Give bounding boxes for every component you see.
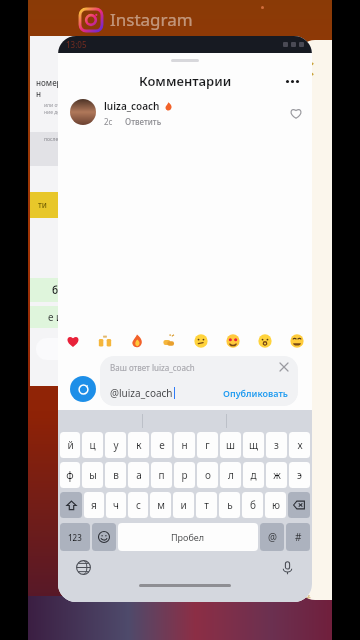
staticText: номером — [36, 77, 73, 88]
button[interactable]: ж — [266, 462, 287, 488]
button[interactable]: з — [266, 432, 287, 458]
button[interactable]: Heart — [66, 334, 80, 348]
staticText: # — [304, 523, 311, 537]
button[interactable]: и — [173, 492, 194, 518]
staticText: ти — [38, 199, 47, 210]
button[interactable]: л — [220, 462, 241, 488]
button[interactable]: Voice input — [278, 558, 296, 576]
button[interactable]: а — [128, 462, 149, 488]
button[interactable]: Ответить — [125, 116, 162, 127]
button[interactable]: я — [84, 492, 104, 518]
staticText: ь — [227, 498, 233, 512]
staticText: р — [181, 468, 188, 482]
staticText: ние денег — [44, 109, 69, 116]
button[interactable]: More options — [282, 71, 302, 91]
staticText: # — [304, 477, 311, 491]
staticText: Instagram — [110, 8, 193, 31]
button[interactable]: ц — [82, 432, 103, 458]
button[interactable]: э — [289, 462, 310, 488]
button[interactable]: Emoji reaction — [194, 334, 208, 348]
button[interactable]: Close reply — [280, 363, 288, 371]
button[interactable]: Raising hands — [98, 334, 112, 348]
button[interactable]: х — [289, 432, 310, 458]
button[interactable]: Like — [290, 107, 302, 119]
staticText: у — [113, 438, 119, 452]
staticText: Ваш ответ luiza_coach — [110, 362, 195, 373]
button[interactable]: ь — [219, 492, 240, 518]
button[interactable]: Camera — [70, 376, 96, 402]
staticText: г — [205, 438, 210, 452]
button[interactable]: р — [174, 462, 195, 488]
button[interactable]: Clap — [162, 334, 176, 348]
staticText: л — [228, 468, 234, 482]
button[interactable]: Пробел — [118, 523, 258, 551]
button[interactable]: г — [197, 432, 218, 458]
staticText: 13:05 — [66, 39, 87, 50]
button[interactable]: номером — [30, 36, 106, 386]
button[interactable]: д — [243, 462, 264, 488]
button[interactable]: Fire — [130, 334, 144, 348]
staticText: ж — [273, 468, 281, 482]
button[interactable]: ю — [265, 492, 286, 518]
button[interactable]: # — [286, 523, 310, 551]
button[interactable]: п — [151, 462, 172, 488]
button[interactable]: ы — [82, 462, 103, 488]
button[interactable]: Back — [298, 40, 332, 600]
button[interactable]: о — [197, 462, 218, 488]
button[interactable]: с — [128, 492, 148, 518]
other: Shift — [66, 500, 77, 511]
button[interactable]: Ваш ответ luiza_coach — [100, 356, 298, 406]
staticText: # — [304, 408, 311, 422]
staticText: банк? — [52, 283, 81, 297]
button[interactable]: ч — [106, 492, 126, 518]
staticText: Комментарии — [139, 72, 232, 90]
staticText: а — [136, 468, 142, 482]
button[interactable]: к — [128, 432, 149, 458]
button[interactable]: н — [174, 432, 195, 458]
button[interactable]: б — [242, 492, 263, 518]
button[interactable]: Change language — [74, 558, 92, 576]
button[interactable]: ш — [220, 432, 241, 458]
button[interactable]: Backspace — [288, 492, 310, 518]
button[interactable]: luiza_coach — [58, 95, 312, 137]
button[interactable]: Emoji reaction — [258, 334, 272, 348]
button[interactable]: м — [150, 492, 171, 518]
button[interactable]: й — [60, 432, 80, 458]
other: Backspace — [293, 499, 305, 511]
staticText: ц — [89, 438, 96, 452]
button[interactable]: Emoji — [92, 523, 116, 551]
staticText: я — [91, 498, 97, 512]
button[interactable]: Опубликовать — [223, 387, 288, 399]
button[interactable]: 123 — [60, 523, 90, 551]
staticText: 123 — [68, 532, 82, 543]
button[interactable]: ф — [60, 462, 80, 488]
staticText: о — [205, 468, 211, 482]
staticText: # — [304, 431, 311, 445]
button[interactable]: е — [151, 432, 172, 458]
button[interactable]: @ — [260, 523, 284, 551]
other: Emoji — [98, 531, 110, 543]
staticText: # — [304, 546, 311, 560]
button[interactable]: т — [196, 492, 217, 518]
staticText: и — [180, 498, 187, 512]
button[interactable]: щ — [243, 432, 264, 458]
button[interactable]: у — [105, 432, 126, 458]
button[interactable]: Emoji reaction — [226, 334, 240, 348]
button[interactable]: в — [105, 462, 126, 488]
button[interactable]: Emoji reaction — [290, 334, 304, 348]
staticText: е — [159, 438, 165, 452]
staticText: 2с — [104, 116, 113, 127]
staticText: е идёт — [48, 310, 79, 324]
staticText: к — [136, 438, 142, 452]
button[interactable]: Shift — [60, 492, 82, 518]
